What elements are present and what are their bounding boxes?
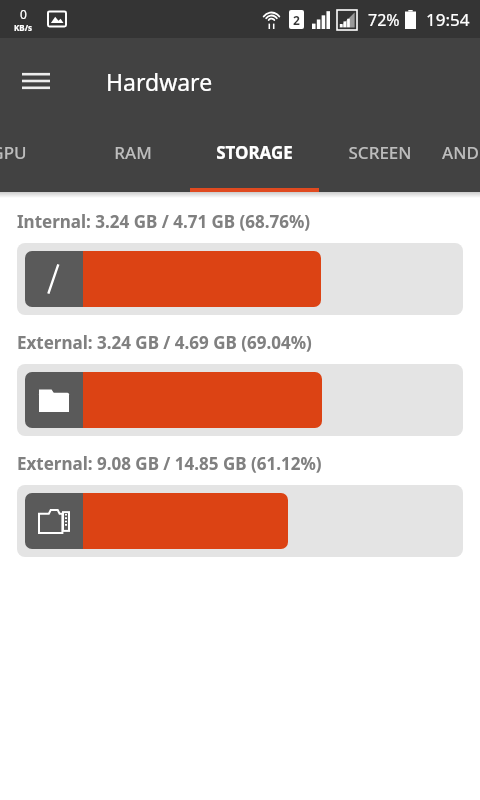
button[interactable]: AND (440, 124, 480, 192)
staticText: Internal: 3.24 GB / 4.71 GB (68.76%) (17, 210, 311, 233)
staticText: Hardware (106, 66, 213, 97)
button[interactable]: GPU (0, 124, 78, 192)
staticText: STORAGE (216, 141, 293, 164)
staticText: KB/s (14, 22, 32, 33)
staticText: AND (442, 141, 479, 164)
staticText: External: 9.08 GB / 14.85 GB (61.12%) (17, 452, 322, 475)
button[interactable]: External: 9.08 GB / 14.85 GB (61.12%) (0, 452, 480, 557)
staticText: 19:54 (426, 8, 470, 31)
button[interactable]: SCREEN (320, 124, 440, 192)
staticText: 0 (20, 6, 27, 22)
staticText: GPU (0, 141, 27, 164)
button[interactable]: Open navigation menu (12, 57, 60, 105)
staticText: RAM (114, 141, 152, 164)
staticText: 2 (293, 12, 300, 28)
button[interactable]: RAM (78, 124, 188, 192)
staticText: SCREEN (348, 141, 412, 164)
staticText: 72% (368, 9, 400, 31)
staticText: External: 3.24 GB / 4.69 GB (69.04%) (17, 331, 312, 354)
button[interactable]: External: 3.24 GB / 4.69 GB (69.04%) (0, 331, 480, 436)
button[interactable]: Internal: 3.24 GB / 4.71 GB (68.76%) (0, 210, 480, 315)
button[interactable]: STORAGE (188, 124, 320, 192)
